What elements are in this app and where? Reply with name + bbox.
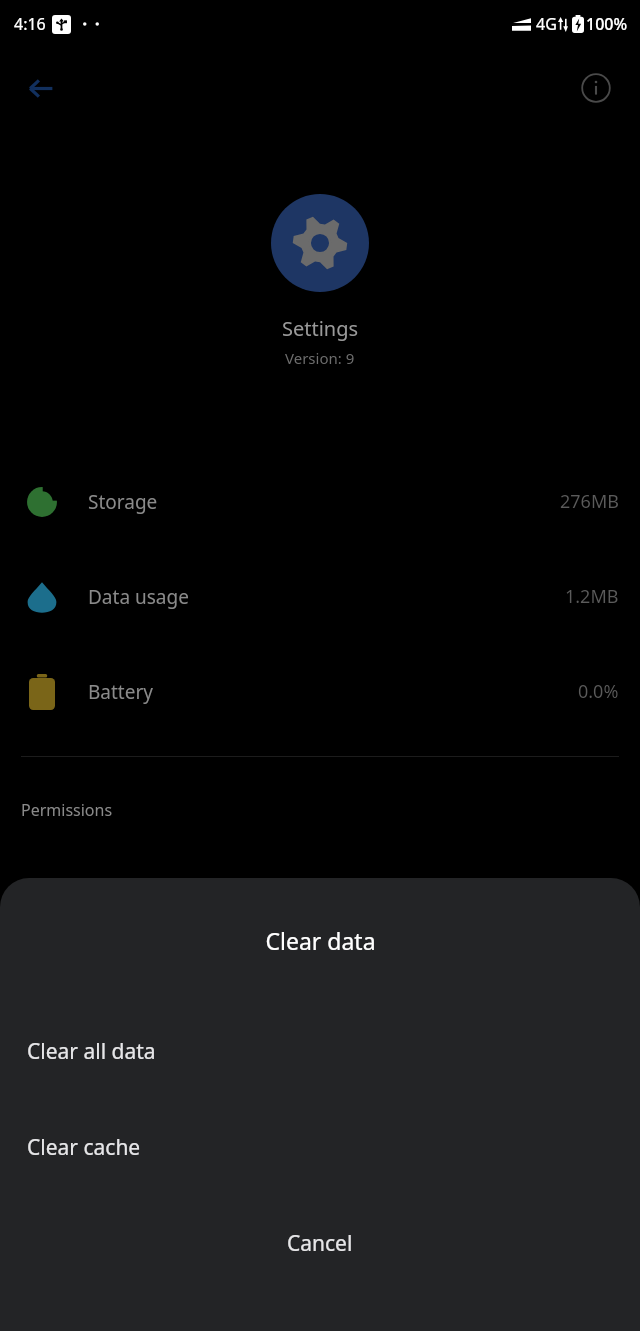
staticText: Cancel	[287, 1229, 353, 1258]
staticText: 276MB	[560, 489, 619, 514]
staticText: Settings	[282, 315, 359, 342]
button[interactable]: Back	[14, 62, 66, 114]
staticText: 1.2MB	[565, 584, 619, 609]
button[interactable]: Data usage	[0, 549, 640, 644]
staticText: Storage	[88, 489, 158, 515]
staticText: Permissions	[21, 799, 113, 821]
button[interactable]: Cancel	[0, 1195, 640, 1291]
button[interactable]: Storage	[0, 454, 640, 549]
staticText: 4G	[536, 13, 557, 35]
staticText: 100%	[586, 13, 628, 35]
staticText: Battery	[88, 679, 153, 705]
staticText: 0.0%	[578, 679, 619, 704]
button[interactable]: Clear cache	[0, 1099, 640, 1195]
button[interactable]: Battery	[0, 644, 640, 739]
button[interactable]: Clear all data	[0, 1003, 640, 1099]
staticText: Clear data	[265, 925, 376, 956]
staticText: Data usage	[88, 584, 189, 610]
staticText: Version: 9	[285, 348, 355, 368]
staticText: 4:16	[14, 13, 46, 35]
button[interactable]: App info	[572, 64, 620, 112]
staticText: Clear all data	[27, 1037, 156, 1066]
staticText: Clear cache	[27, 1133, 141, 1162]
